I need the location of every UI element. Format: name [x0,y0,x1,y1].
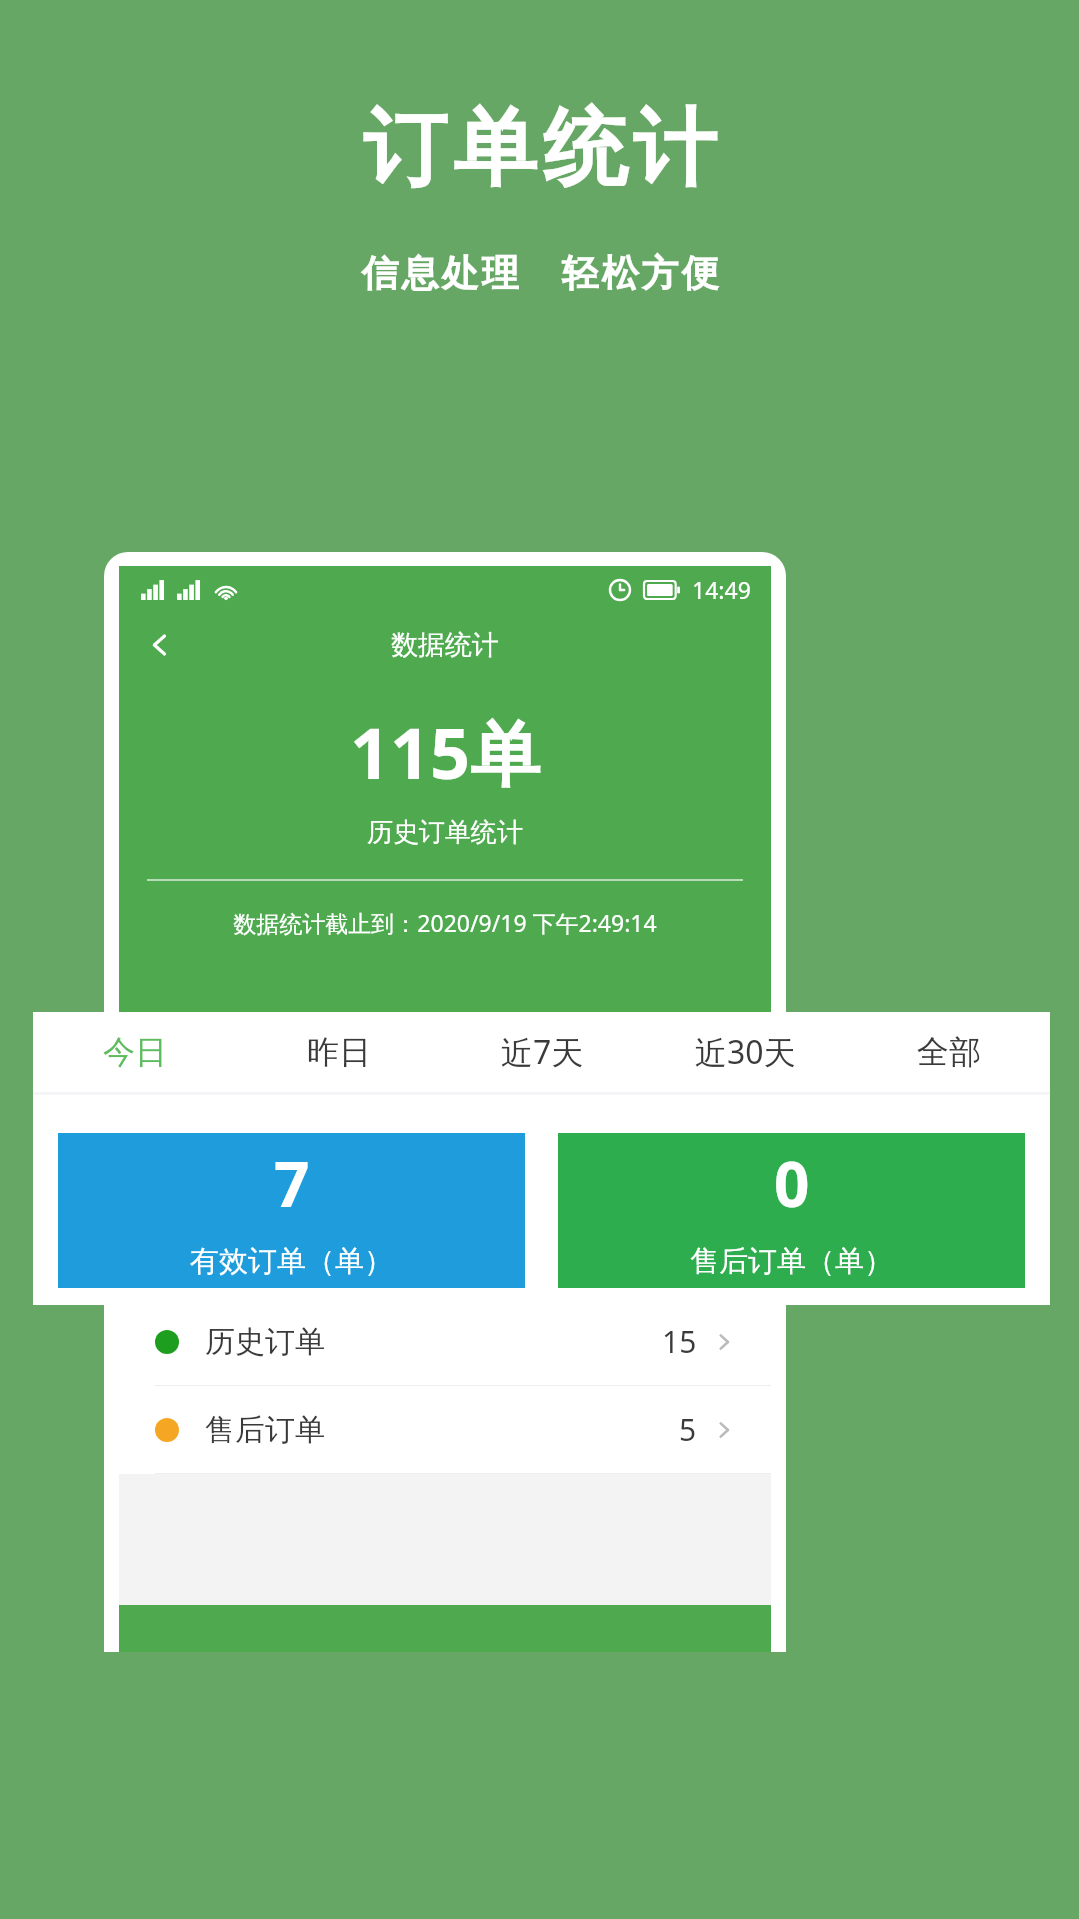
staticText: 今日 [103,1032,167,1072]
staticText: 历史订单 [205,1323,662,1361]
staticText: 15 [662,1321,697,1362]
staticText: 售后订单（单） [690,1243,893,1280]
staticText: 历史订单统计 [119,816,771,849]
staticText: 近30天 [695,1030,796,1074]
staticText: 115单 [119,704,771,800]
staticText: 近7天 [501,1030,584,1074]
button[interactable]: 历史订单 [119,1298,771,1385]
button[interactable]: Back [133,618,187,672]
button[interactable]: 0 [455,1120,747,1270]
staticText: 197 [236,1126,343,1210]
staticText: 订单统计 [360,96,720,202]
staticText: 信息处理 轻松方便 [360,246,720,297]
staticText: 数据统计截止到：2020/9/19 下午2:49:14 [119,907,771,938]
button[interactable]: 0 [558,1133,1025,1288]
button[interactable]: 近7天 [441,1012,644,1092]
staticText: 全部 [917,1032,981,1072]
button[interactable]: 昨日 [237,1012,441,1092]
button[interactable]: 近30天 [644,1012,847,1092]
staticText: 14:49 [692,574,751,605]
staticText: 昨日 [307,1032,371,1072]
button[interactable]: 全部 [847,1012,1050,1092]
staticText: 0 [583,1126,619,1210]
staticText: 5 [679,1409,697,1450]
button[interactable]: 售后订单 [119,1386,771,1473]
staticText: 收入金额（元） [188,1228,391,1265]
button[interactable]: 今日 [33,1012,237,1092]
button[interactable]: 197 [143,1120,435,1270]
staticText: 数据统计 [391,628,499,662]
staticText: 有效订单（单） [190,1243,393,1280]
staticText: 0 [774,1141,810,1225]
button[interactable]: 7 [58,1133,525,1288]
staticText: 售后订单 [205,1411,679,1449]
staticText: 7 [274,1141,310,1225]
staticText: 退款金额（元） [500,1228,703,1265]
